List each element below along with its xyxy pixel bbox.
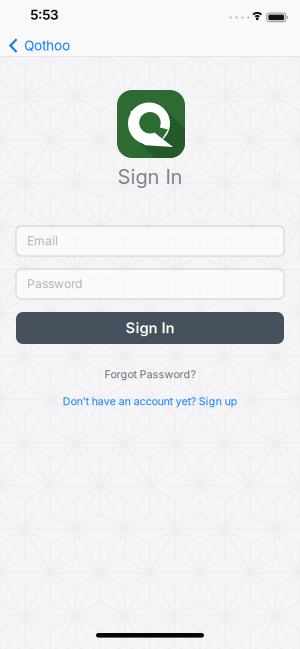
button[interactable]: Sign In: [16, 312, 284, 344]
staticText: 5:53: [30, 7, 58, 23]
button[interactable]: Don't have an account yet? Sign up: [62, 395, 237, 408]
staticText: Email: [27, 234, 58, 248]
button[interactable]: Forgot Password?: [104, 368, 195, 381]
staticText: Sign In: [125, 319, 174, 337]
button[interactable]: Back: [0, 38, 70, 53]
staticText: Don't have an account yet? Sign up: [62, 395, 237, 408]
staticText: Password: [27, 277, 82, 291]
staticText: Qothoo: [24, 38, 70, 53]
staticText: Sign In: [117, 165, 182, 189]
staticText: Forgot Password?: [104, 368, 195, 381]
